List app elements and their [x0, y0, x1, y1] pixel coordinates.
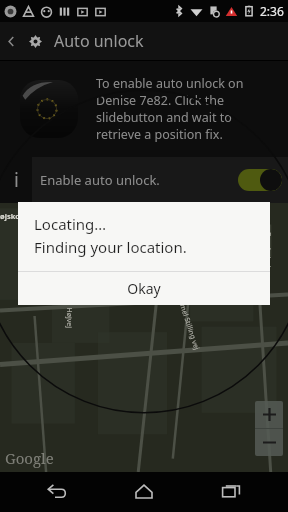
staticText: Gammel Stilling vej: [172, 288, 202, 352]
button[interactable]: i: [0, 157, 288, 203]
button[interactable]: Enable auto unlock toggle: [238, 169, 282, 191]
staticText: Locating…: [34, 214, 107, 234]
staticText: Okay: [127, 279, 161, 298]
staticText: 2:36: [260, 3, 284, 19]
staticText: Google: [5, 448, 54, 468]
button[interactable]: Back: [27, 472, 87, 512]
button[interactable]: Recent apps: [201, 472, 261, 512]
button[interactable]: Okay: [18, 272, 270, 305]
button[interactable]: Zoom in: [255, 401, 283, 428]
staticText: Gronhøjvej: [262, 231, 272, 268]
staticText: To enable auto unlock on Denise 7e82. Cl…: [96, 75, 278, 143]
staticText: i: [14, 167, 19, 193]
button[interactable]: Home: [114, 472, 174, 512]
staticText: øjskolen Sfo: [0, 211, 46, 221]
staticText: Auto unlock: [54, 30, 144, 52]
staticText: Finding your location.: [34, 237, 187, 257]
button[interactable]: Settings: [22, 22, 48, 60]
staticText: Højvej: [63, 307, 73, 328]
button[interactable]: Back: [0, 22, 22, 60]
staticText: Enable auto unlock.: [40, 171, 160, 189]
button[interactable]: Zoom out: [255, 429, 283, 456]
